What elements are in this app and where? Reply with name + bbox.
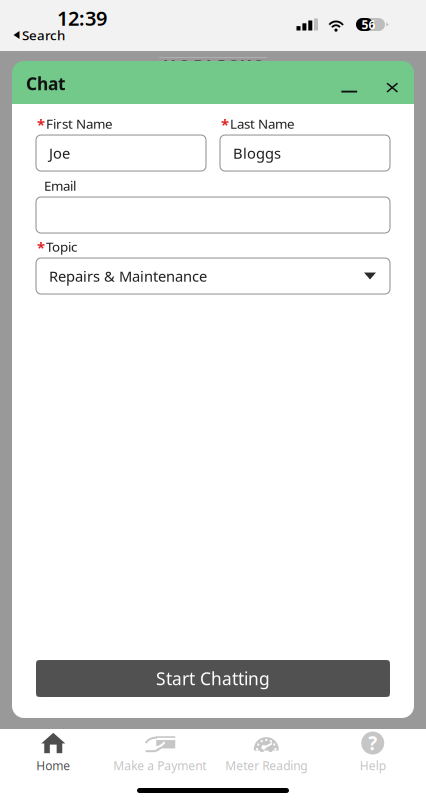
staticText: Home	[36, 757, 70, 773]
button[interactable]: Meter Reading	[213, 729, 319, 779]
staticText: Make a Payment	[113, 757, 206, 773]
staticText: Chat	[26, 72, 66, 95]
staticText: First Name	[46, 115, 113, 132]
button[interactable]: Minimize chat	[322, 61, 376, 104]
button[interactable]: Repairs & Maintenance	[36, 258, 390, 294]
staticText: Joe	[49, 143, 70, 163]
staticText: *	[221, 115, 229, 134]
staticText: Last Name	[230, 115, 295, 132]
button[interactable]: Start Chatting	[36, 660, 390, 697]
button[interactable]: Make a Payment	[106, 729, 213, 779]
staticText: Help	[360, 757, 386, 773]
staticText: *	[37, 115, 45, 134]
button[interactable]: ?	[319, 729, 426, 779]
staticText: Email	[44, 177, 76, 194]
staticText: Search	[22, 26, 65, 44]
staticText: ?	[368, 731, 377, 755]
staticText: *	[37, 238, 45, 257]
button[interactable]: Search	[0, 28, 120, 42]
staticText: Repairs & Maintenance	[49, 266, 207, 286]
button[interactable]: Close chat	[376, 61, 408, 104]
staticText: 56	[361, 16, 375, 32]
staticText: Bloggs	[233, 143, 281, 163]
staticText: Meter Reading	[225, 757, 307, 773]
staticText: Start Chatting	[156, 667, 270, 690]
staticText: 12:39	[57, 5, 107, 31]
button[interactable]: Home	[0, 729, 106, 779]
staticText: Topic	[46, 238, 77, 255]
staticText: HORLICKS	[163, 55, 263, 78]
